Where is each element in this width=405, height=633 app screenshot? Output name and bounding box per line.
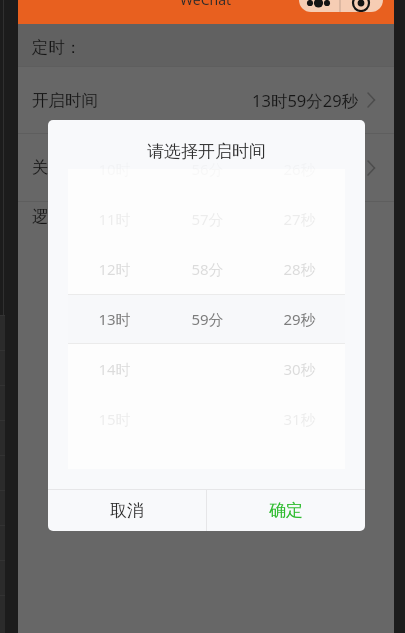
button[interactable]: 确定 xyxy=(207,490,365,531)
staticText: 13时59分29秒 xyxy=(252,89,359,112)
staticText: 13时 xyxy=(98,309,131,329)
staticText: 逻辑 xyxy=(32,206,65,227)
staticText: 29秒 xyxy=(283,309,316,329)
staticText: 取消 xyxy=(110,500,144,521)
staticText: 27秒 xyxy=(283,209,316,229)
staticText: 30秒 xyxy=(283,359,316,379)
staticText: 31秒 xyxy=(283,409,316,429)
button[interactable]: More options xyxy=(299,0,383,12)
staticText: 21时30分00秒 xyxy=(252,156,359,179)
staticText: 12时 xyxy=(98,259,131,279)
staticText: 开启时间 xyxy=(32,90,98,111)
button[interactable]: 取消 xyxy=(48,490,206,531)
staticText: 57分 xyxy=(191,209,224,229)
button[interactable]: 关闭时间 xyxy=(18,134,394,201)
staticText: 14时 xyxy=(98,359,131,379)
staticText: 10时 xyxy=(98,159,131,179)
staticText: WeChat xyxy=(180,0,232,9)
staticText: 定时： xyxy=(32,37,82,58)
staticText: 请选择开启时间 xyxy=(147,141,266,162)
staticText: 56分 xyxy=(191,159,224,179)
staticText: 关闭时间 xyxy=(32,157,98,178)
staticText: 11时 xyxy=(98,209,131,229)
staticText: 58分 xyxy=(191,259,224,279)
staticText: 59分 xyxy=(191,309,224,329)
button[interactable]: 开启时间 xyxy=(18,67,394,133)
staticText: 确定 xyxy=(269,500,303,521)
staticText: 15时 xyxy=(98,409,131,429)
staticText: 28秒 xyxy=(283,259,316,279)
